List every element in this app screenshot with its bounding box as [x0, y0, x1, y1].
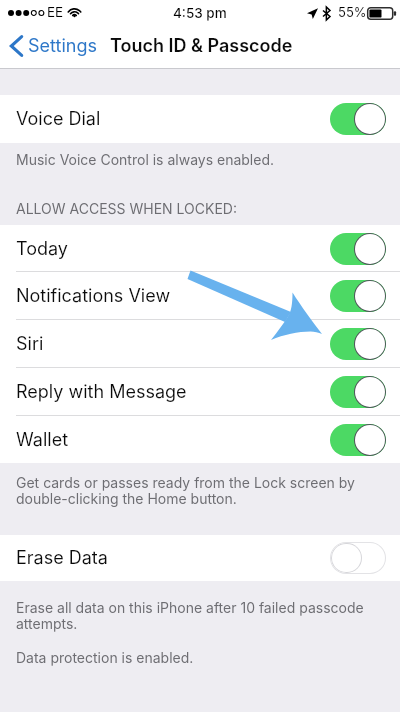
- button[interactable]: Toggle off: [331, 543, 385, 573]
- button[interactable]: Reply with Message: [0, 368, 400, 416]
- staticText: Get cards or passes ready from the Lock …: [16, 474, 355, 508]
- staticText: 55%: [338, 4, 367, 20]
- button[interactable]: Today: [0, 225, 400, 272]
- staticText: ALLOW ACCESS WHEN LOCKED:: [16, 200, 237, 217]
- button[interactable]: Toggle on: [330, 424, 386, 456]
- staticText: Voice Dial: [16, 108, 101, 130]
- staticText: Today: [16, 238, 68, 260]
- button[interactable]: Voice Dial: [0, 95, 400, 143]
- staticText: Music Voice Control is always enabled.: [16, 151, 275, 168]
- button[interactable]: Notifications View: [0, 272, 400, 320]
- button[interactable]: Toggle on: [330, 328, 386, 360]
- staticText: Wallet: [16, 429, 69, 451]
- staticText: 4:53 pm: [173, 5, 227, 21]
- button[interactable]: Siri: [0, 320, 400, 368]
- button[interactable]: Wallet: [0, 416, 400, 463]
- staticText: Siri: [16, 333, 44, 355]
- staticText: Data protection is enabled.: [16, 649, 194, 666]
- staticText: Erase all data on this iPhone after 10 f…: [16, 599, 364, 633]
- staticText: EE: [47, 4, 64, 20]
- button[interactable]: Toggle on: [330, 103, 386, 135]
- staticText: Reply with Message: [16, 381, 187, 403]
- button[interactable]: Toggle on: [330, 233, 386, 265]
- button[interactable]: Erase Data: [0, 535, 400, 581]
- staticText: Touch ID & Passcode: [110, 35, 293, 57]
- button[interactable]: Back to Settings: [0, 28, 103, 63]
- staticText: Settings: [28, 35, 97, 57]
- button[interactable]: Toggle on: [330, 280, 386, 312]
- staticText: Erase Data: [16, 547, 108, 569]
- button[interactable]: Toggle on: [330, 376, 386, 408]
- staticText: Notifications View: [16, 285, 171, 307]
